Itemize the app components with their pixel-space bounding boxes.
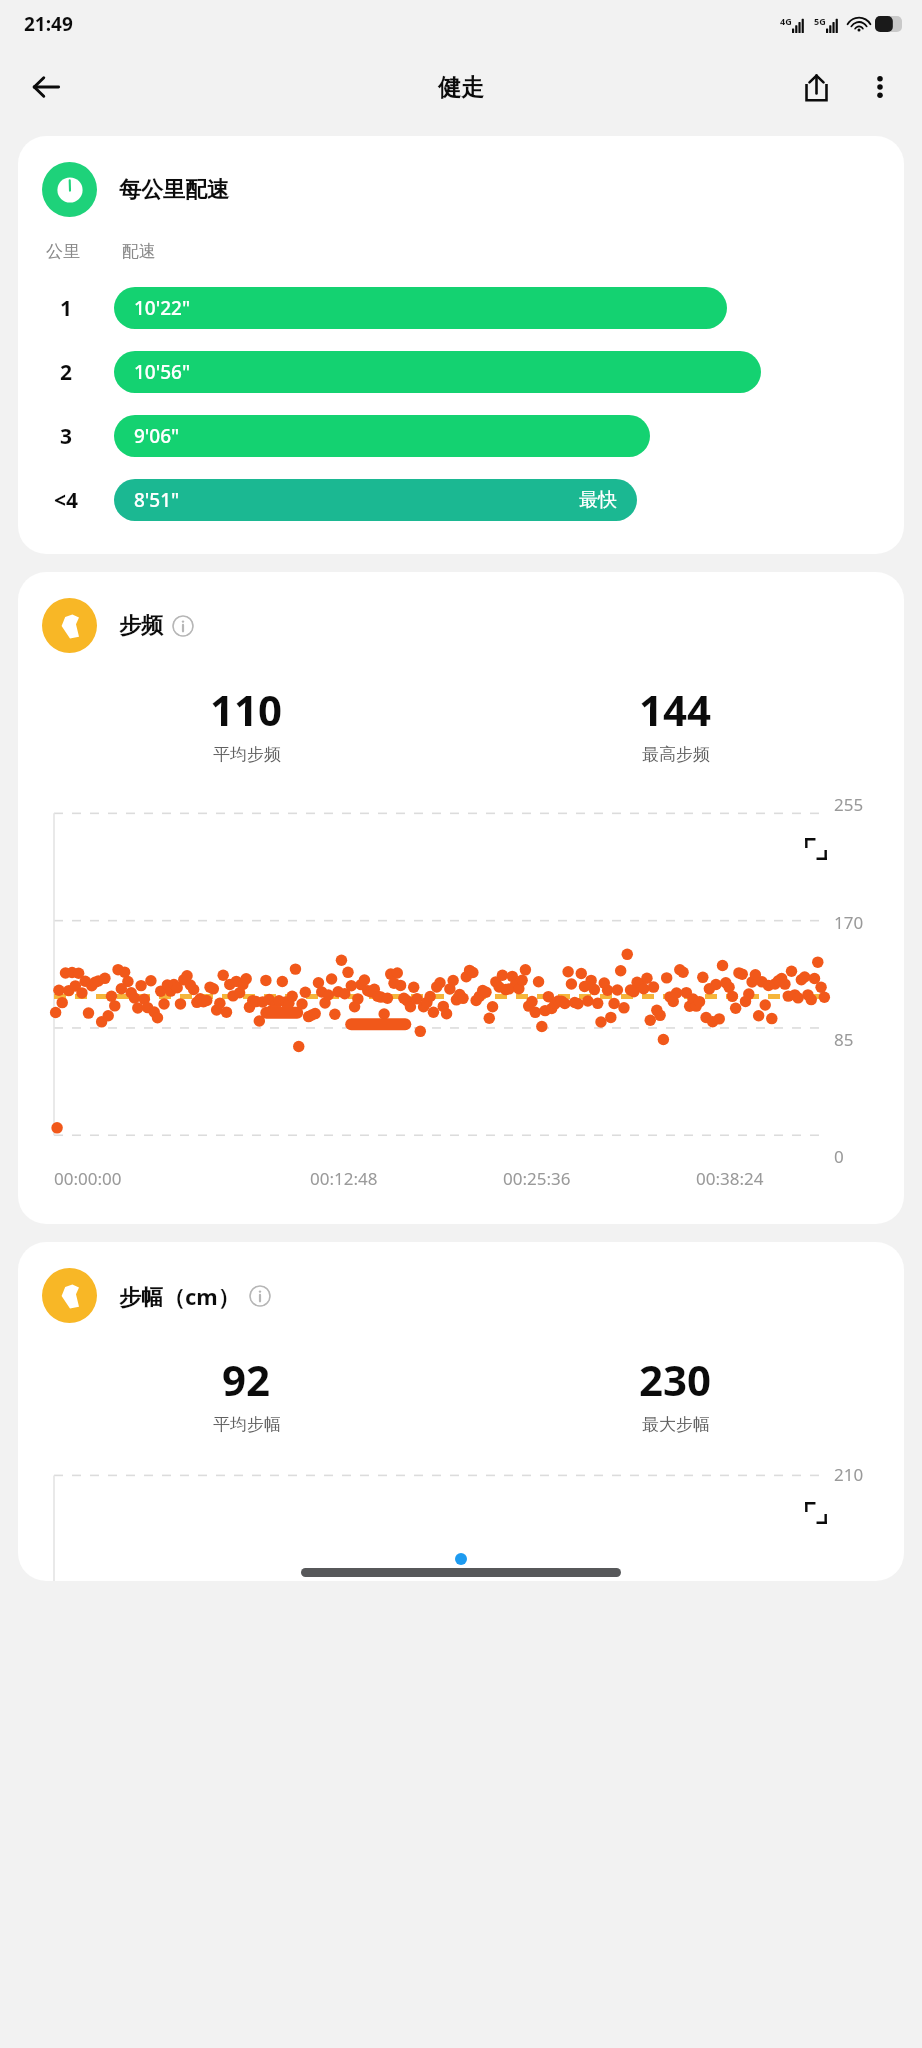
button[interactable]: 每公里配速 — [42, 162, 880, 217]
staticText: 85 — [834, 1028, 854, 1046]
button[interactable]: 步幅（cm） — [42, 1268, 880, 1323]
staticText: 步幅（cm） — [119, 1281, 240, 1311]
staticText: 步频 — [119, 612, 163, 640]
button[interactable]: 1 — [18, 276, 904, 340]
staticText: 最快 — [579, 488, 617, 512]
staticText: 2 — [60, 358, 73, 387]
staticText: 5G — [814, 15, 826, 27]
staticText: 230 — [639, 1351, 712, 1408]
button[interactable]: 3 — [18, 404, 904, 468]
button[interactable]: 步频 — [42, 598, 880, 653]
staticText: 00:00:00 — [54, 1167, 122, 1190]
staticText: 210 — [834, 1463, 864, 1486]
staticText: 00:12:48 — [310, 1167, 378, 1190]
staticText: 255 — [834, 793, 864, 811]
staticText: 110 — [210, 681, 283, 738]
staticText: 0 — [834, 1145, 844, 1163]
button[interactable]: Share — [784, 55, 848, 119]
button[interactable]: 2 — [18, 340, 904, 404]
staticText: 4G — [780, 15, 792, 27]
staticText: 配速 — [122, 241, 156, 262]
button[interactable]: Info — [249, 1285, 271, 1307]
button[interactable]: Expand chart — [790, 823, 842, 875]
staticText: 8'51" — [134, 487, 180, 513]
staticText: 每公里配速 — [119, 176, 229, 204]
staticText: 10'22" — [134, 295, 191, 321]
button[interactable]: Info — [172, 615, 194, 637]
staticText: 平均步频 — [213, 744, 281, 765]
staticText: 平均步幅 — [213, 1414, 281, 1435]
staticText: 健走 — [438, 73, 484, 102]
staticText: 21:49 — [24, 11, 73, 37]
staticText: 10'56" — [134, 359, 191, 385]
staticText: 1 — [60, 294, 73, 323]
button[interactable]: Expand chart — [790, 1487, 842, 1539]
staticText: 170 — [834, 911, 864, 929]
staticText: <4 — [54, 486, 79, 515]
staticText: 92 — [222, 1351, 271, 1408]
staticText: 3 — [60, 422, 73, 451]
staticText: 00:38:24 — [696, 1167, 764, 1190]
button[interactable]: Back — [14, 55, 78, 119]
staticText: 00:25:36 — [503, 1167, 571, 1190]
staticText: 144 — [639, 681, 712, 738]
button[interactable]: More options — [848, 55, 912, 119]
staticText: 9'06" — [134, 423, 180, 449]
staticText: 最大步幅 — [642, 1414, 710, 1435]
staticText: 公里 — [46, 241, 80, 262]
button[interactable]: <4 — [18, 468, 904, 532]
staticText: 最高步频 — [642, 744, 710, 765]
